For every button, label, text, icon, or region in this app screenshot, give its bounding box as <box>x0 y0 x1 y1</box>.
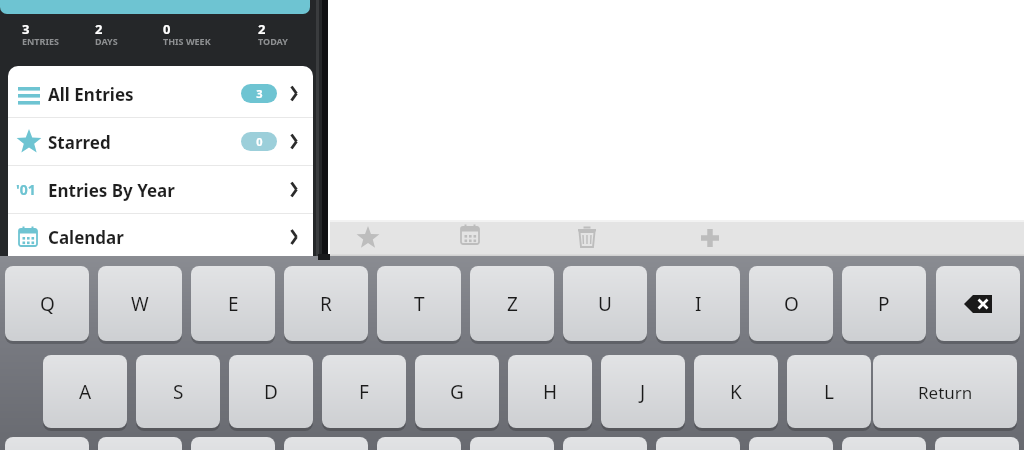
button[interactable]: Calendar <box>460 224 488 252</box>
button[interactable] <box>563 437 647 450</box>
button[interactable]: Star <box>354 224 382 252</box>
staticText: L <box>824 379 834 405</box>
button[interactable]: E <box>191 266 275 342</box>
button[interactable]: Delete <box>573 224 601 252</box>
button[interactable]: P <box>842 266 926 342</box>
staticText: 0 <box>163 20 171 38</box>
button[interactable]: K <box>694 355 778 429</box>
staticText: H <box>543 379 558 405</box>
staticText: D <box>264 379 278 405</box>
staticText: O <box>784 291 799 317</box>
staticText: All Entries <box>48 83 134 106</box>
staticText: J <box>640 379 646 405</box>
button[interactable]: Add <box>696 224 724 252</box>
button[interactable] <box>470 437 554 450</box>
button[interactable] <box>191 437 275 450</box>
button[interactable] <box>749 437 833 450</box>
staticText: F <box>359 379 369 405</box>
button[interactable] <box>935 437 1019 450</box>
button[interactable]: O <box>749 266 833 342</box>
staticText: W <box>131 291 149 317</box>
staticText: K <box>730 379 742 405</box>
button[interactable]: Return <box>873 355 1017 429</box>
staticText: S <box>173 379 184 405</box>
button[interactable]: T <box>377 266 461 342</box>
staticText: R <box>320 291 332 317</box>
button[interactable]: A <box>43 355 127 429</box>
staticText: Starred <box>48 131 111 154</box>
staticText: THIS WEEK <box>163 35 211 47</box>
button[interactable]: W <box>98 266 182 342</box>
staticText: Z <box>507 291 518 317</box>
staticText: 2 <box>95 20 103 38</box>
button[interactable] <box>656 437 740 450</box>
button[interactable] <box>284 437 368 450</box>
button[interactable]: R <box>284 266 368 342</box>
button[interactable]: Starred <box>8 118 313 165</box>
staticText: I <box>695 291 702 317</box>
staticText: ENTRIES <box>22 35 59 47</box>
staticText: 2 <box>258 20 266 38</box>
button[interactable]: S <box>136 355 220 429</box>
button[interactable] <box>98 437 182 450</box>
button[interactable]: J <box>601 355 685 429</box>
staticText: Return <box>918 381 973 404</box>
staticText: 3 <box>256 86 263 101</box>
button[interactable]: All Entries <box>8 70 313 117</box>
button[interactable] <box>842 437 926 450</box>
staticText: Calendar <box>48 226 124 249</box>
button[interactable] <box>377 437 461 450</box>
staticText: Q <box>40 291 55 317</box>
button[interactable]: Q <box>5 266 89 342</box>
button[interactable]: '01 <box>8 166 313 213</box>
button[interactable]: Backspace <box>936 266 1020 342</box>
staticText: '01 <box>16 180 36 199</box>
button[interactable]: Calendar <box>8 214 313 256</box>
staticText: 0 <box>256 134 263 149</box>
staticText: A <box>79 379 92 405</box>
button[interactable]: G <box>415 355 499 429</box>
staticText: TODAY <box>258 35 288 47</box>
button[interactable]: Z <box>470 266 554 342</box>
button[interactable]: L <box>787 355 871 429</box>
button[interactable] <box>330 220 1024 256</box>
button[interactable] <box>0 0 310 14</box>
button[interactable]: U <box>563 266 647 342</box>
staticText: DAYS <box>95 35 118 47</box>
staticText: T <box>414 291 425 317</box>
button[interactable]: H <box>508 355 592 429</box>
button[interactable] <box>5 437 89 450</box>
staticText: 3 <box>22 20 30 38</box>
button[interactable]: I <box>656 266 740 342</box>
staticText: U <box>598 291 612 317</box>
staticText: E <box>228 291 239 317</box>
staticText: G <box>450 379 464 405</box>
staticText: P <box>878 291 890 317</box>
button[interactable]: D <box>229 355 313 429</box>
button[interactable]: F <box>322 355 406 429</box>
staticText: Entries By Year <box>48 179 175 202</box>
